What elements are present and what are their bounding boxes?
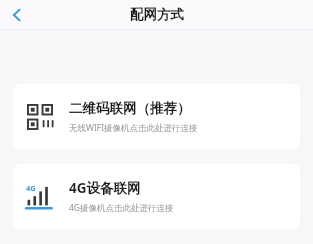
- button[interactable]: Back: [0, 0, 34, 29]
- staticText: 4G设备联网: [69, 179, 141, 197]
- button[interactable]: 二维码联网（推荐）: [13, 84, 300, 149]
- button[interactable]: 4G: [13, 164, 300, 229]
- staticText: 4G: [26, 183, 36, 193]
- staticText: 4G摄像机点击此处进行连接: [69, 202, 174, 214]
- staticText: 二维码联网（推荐）: [69, 100, 191, 117]
- staticText: 无线WIFI摄像机点击此处进行连接: [69, 122, 198, 134]
- staticText: 配网方式: [130, 6, 184, 23]
